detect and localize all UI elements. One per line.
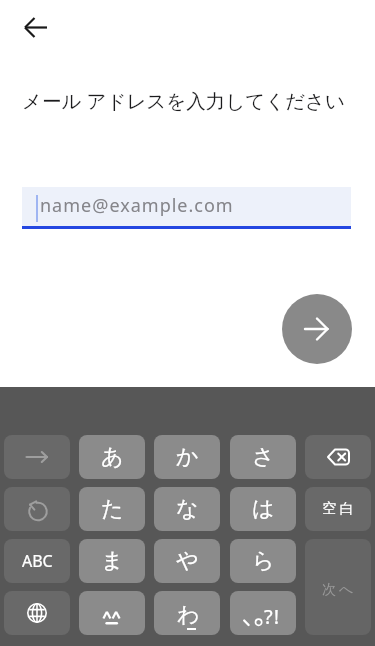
- button[interactable]: [4, 591, 70, 635]
- staticText: ら: [252, 547, 275, 575]
- button[interactable]: [4, 435, 70, 479]
- button[interactable]: [12, 4, 60, 52]
- staticText: か: [176, 443, 199, 471]
- staticText: は: [252, 495, 275, 523]
- button[interactable]: さ: [230, 435, 296, 479]
- staticText: わ: [177, 601, 200, 629]
- staticText: 空白: [321, 500, 355, 518]
- staticText: な: [176, 495, 199, 523]
- button[interactable]: は: [230, 487, 296, 531]
- staticText: や: [176, 547, 199, 575]
- staticText: 次へ: [322, 581, 357, 599]
- staticText: ABC: [22, 550, 53, 572]
- staticText: さ: [252, 443, 275, 471]
- button[interactable]: 次へ: [305, 539, 371, 635]
- button[interactable]: ABC: [4, 539, 70, 583]
- staticText: あ: [101, 443, 124, 471]
- staticText: た: [101, 495, 124, 523]
- button[interactable]: ら: [230, 539, 296, 583]
- button[interactable]: わ: [154, 591, 220, 635]
- staticText: name@example.com: [40, 193, 234, 218]
- button[interactable]: [4, 487, 70, 531]
- button[interactable]: name@example.com: [22, 187, 351, 226]
- button[interactable]: た: [79, 487, 145, 531]
- button[interactable]: [305, 435, 371, 479]
- staticText: ま: [101, 547, 124, 575]
- button[interactable]: [79, 591, 145, 635]
- button[interactable]: な: [154, 487, 220, 531]
- button[interactable]: か: [154, 435, 220, 479]
- button[interactable]: ?!: [230, 591, 296, 635]
- button[interactable]: や: [154, 539, 220, 583]
- staticText: メール アドレスを入力してください: [22, 87, 346, 114]
- button[interactable]: あ: [79, 435, 145, 479]
- button[interactable]: [282, 294, 352, 364]
- button[interactable]: 空白: [305, 487, 371, 531]
- staticText: ?!: [264, 603, 281, 630]
- button[interactable]: ま: [79, 539, 145, 583]
